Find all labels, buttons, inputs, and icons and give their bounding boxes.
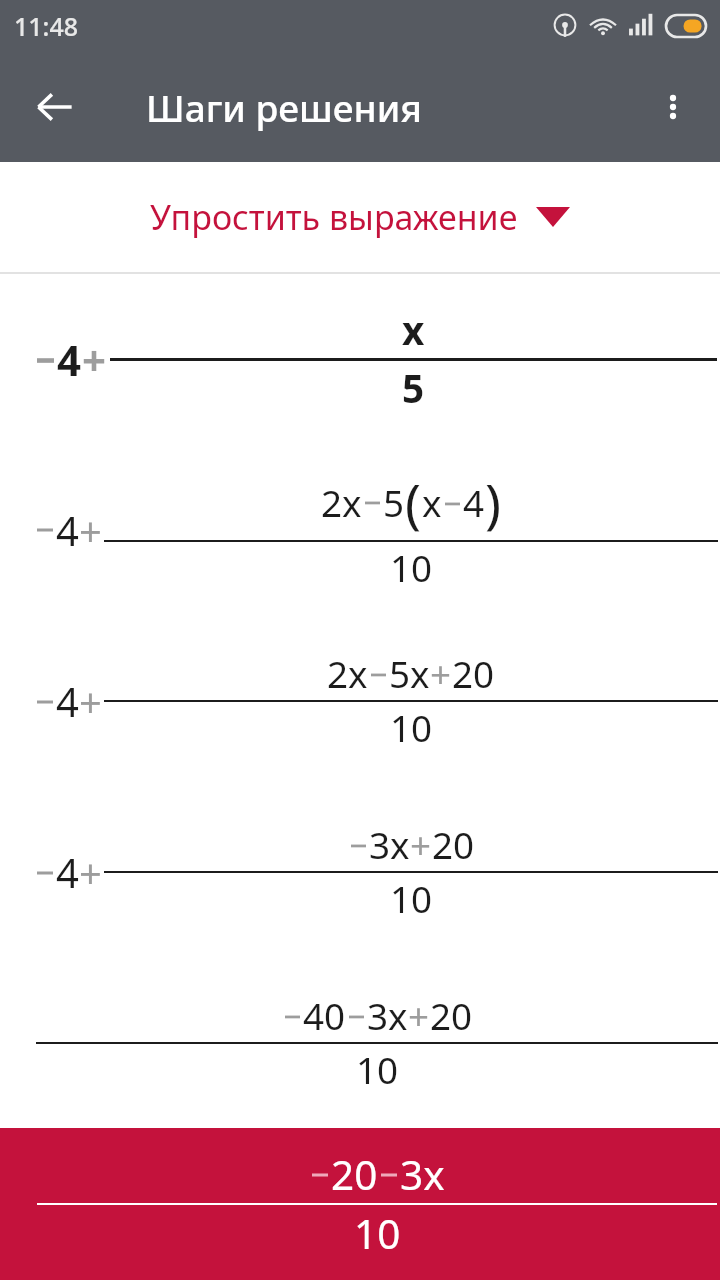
staticText: + — [82, 331, 107, 388]
staticText: 3x — [367, 991, 408, 1041]
staticText: ( — [405, 466, 422, 539]
staticText: 10 — [390, 703, 433, 753]
button[interactable]: 4 — [0, 786, 720, 957]
staticText: 5 — [383, 478, 405, 528]
staticText: 40 — [303, 991, 346, 1041]
staticText: 4 — [56, 845, 79, 899]
staticText: 4 — [56, 674, 79, 728]
button[interactable]: 20 — [0, 1128, 720, 1280]
staticText: x — [422, 478, 442, 528]
staticText: 10 — [354, 1206, 401, 1261]
button[interactable]: 4 — [0, 444, 720, 615]
staticText: ) — [485, 466, 502, 539]
staticText: 4 — [463, 478, 485, 528]
staticText: 4 — [57, 331, 82, 388]
button[interactable]: 40 — [0, 957, 720, 1128]
staticText: 3x — [369, 820, 410, 870]
button[interactable]: More options — [640, 74, 706, 140]
staticText: 3x — [400, 1147, 445, 1202]
staticText: x — [402, 304, 425, 357]
staticText: 4 — [56, 503, 79, 557]
staticText: + — [79, 503, 102, 557]
staticText: 20 — [432, 820, 475, 870]
staticText: 20 — [452, 649, 495, 699]
staticText: 10 — [356, 1045, 399, 1095]
staticText: 10 — [390, 874, 433, 924]
staticText: 5 — [402, 362, 425, 415]
staticText: 20 — [430, 991, 473, 1041]
button[interactable]: 4 — [0, 274, 720, 444]
staticText: 5x — [389, 649, 430, 699]
staticText: + — [79, 845, 102, 899]
button[interactable]: Упростить выражение — [150, 194, 570, 240]
staticText: 2x — [327, 649, 368, 699]
staticText: Шаги решения — [146, 82, 422, 132]
staticText: 20 — [331, 1147, 378, 1202]
button[interactable]: 4 — [0, 615, 720, 786]
staticText: Упростить выражение — [150, 194, 518, 240]
staticText: 11:48 — [14, 9, 79, 43]
staticText: + — [408, 991, 430, 1041]
button[interactable]: Back — [18, 71, 90, 143]
staticText: 10 — [390, 543, 433, 593]
staticText: + — [430, 649, 452, 699]
staticText: + — [79, 674, 102, 728]
staticText: 2x — [321, 478, 362, 528]
staticText: + — [410, 820, 432, 870]
